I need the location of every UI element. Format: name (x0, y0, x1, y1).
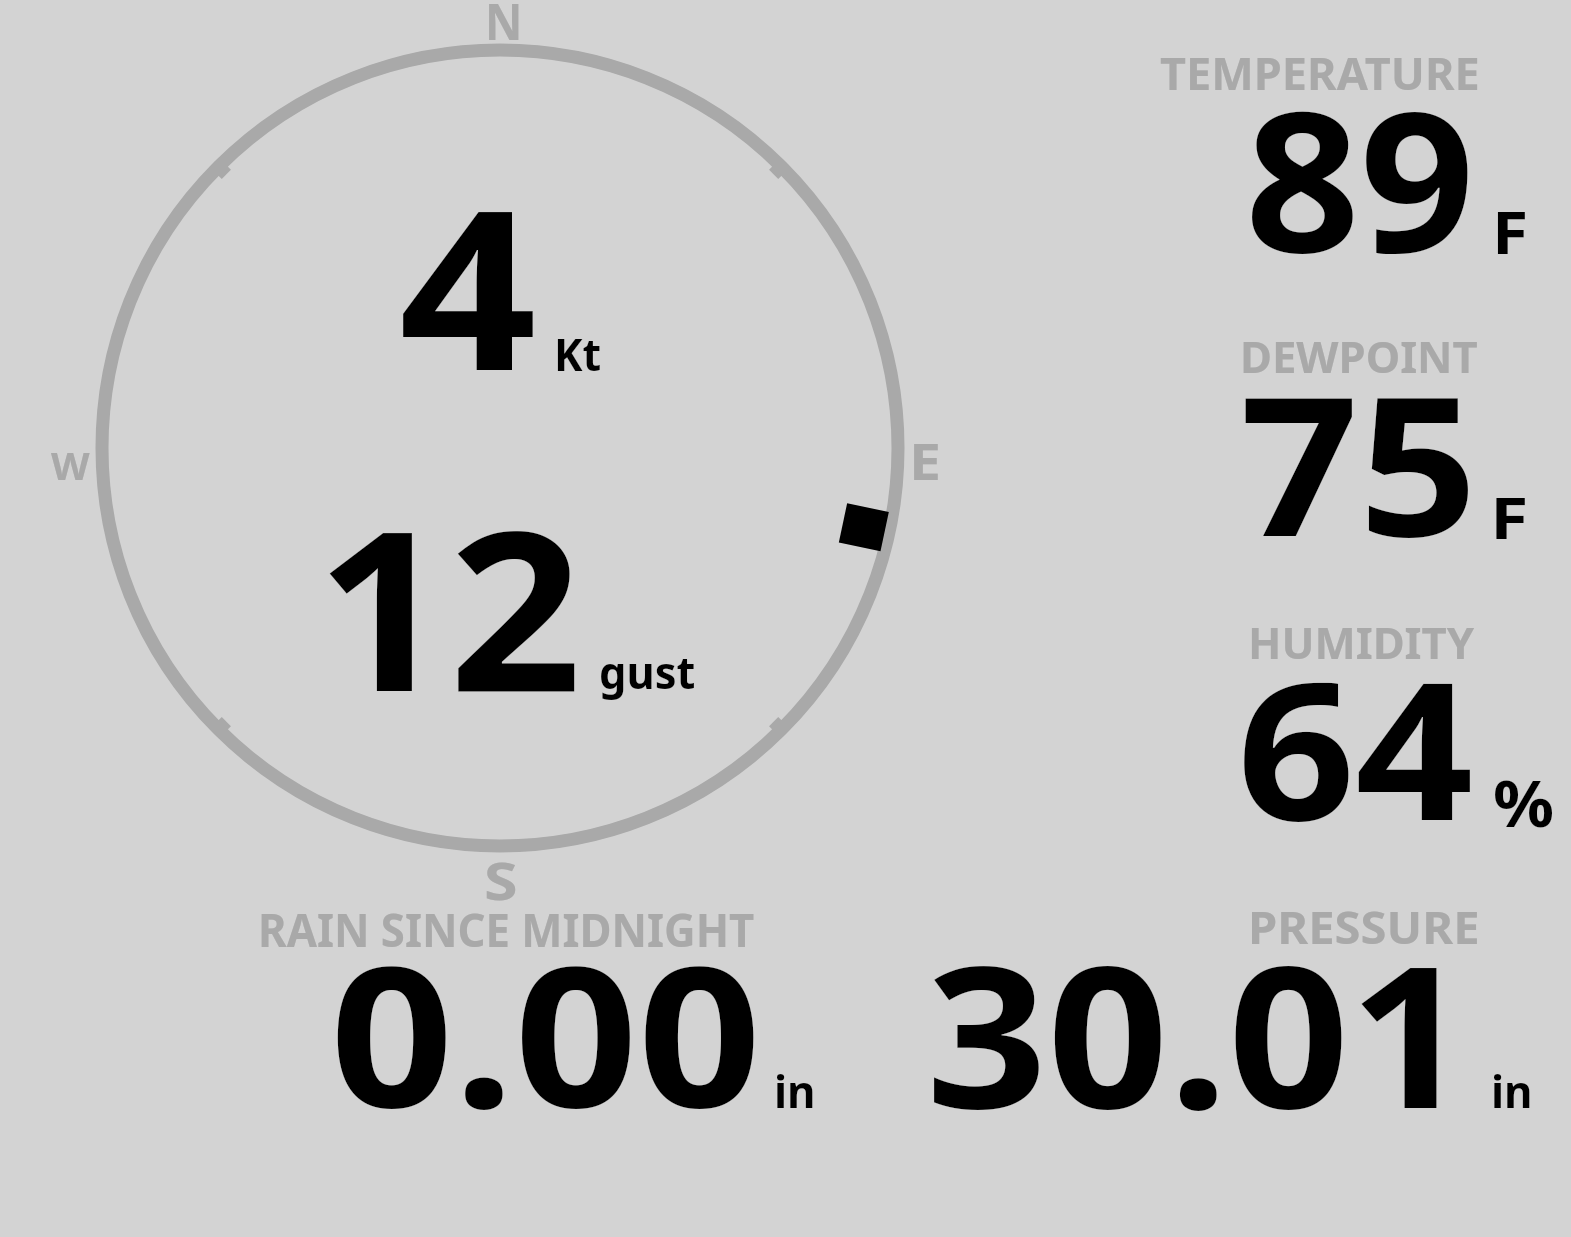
staticText: PRESSURE (1248, 896, 1480, 958)
staticText: 4 (399, 134, 537, 435)
staticText: 30.01 (926, 899, 1471, 1165)
button[interactable]: Rain since midnight 0.00 in (250, 900, 830, 1125)
staticText: TEMPERATURE (1160, 42, 1480, 103)
button[interactable]: Wind direction compass (86, 34, 914, 862)
staticText: Kt (554, 323, 602, 384)
staticText: 89 (1245, 45, 1475, 309)
button[interactable]: Temperature 89 F (1150, 45, 1550, 285)
staticText: 12 (316, 454, 583, 755)
staticText: 0.00 (330, 900, 762, 1163)
staticText: 75 (1240, 331, 1478, 592)
staticText: F (1490, 479, 1530, 556)
staticText: gust (599, 641, 696, 702)
button[interactable]: Dewpoint 75 F (1150, 330, 1550, 570)
staticText: W (51, 440, 90, 491)
staticText: N (485, 0, 523, 55)
staticText: E (909, 427, 941, 495)
staticText: HUMIDITY (1248, 612, 1475, 672)
staticText: F (1492, 191, 1529, 271)
staticText: in (1491, 1060, 1533, 1122)
staticText: RAIN SINCE MIDNIGHT (258, 897, 755, 961)
button[interactable]: Humidity 64 percent (1150, 615, 1550, 855)
staticText: in (774, 1060, 816, 1122)
staticText: DEWPOINT (1240, 328, 1479, 386)
button[interactable]: Pressure 30.01 in (900, 900, 1540, 1125)
staticText: 64 (1237, 616, 1474, 876)
staticText: % (1493, 759, 1554, 846)
staticText: S (484, 845, 518, 916)
